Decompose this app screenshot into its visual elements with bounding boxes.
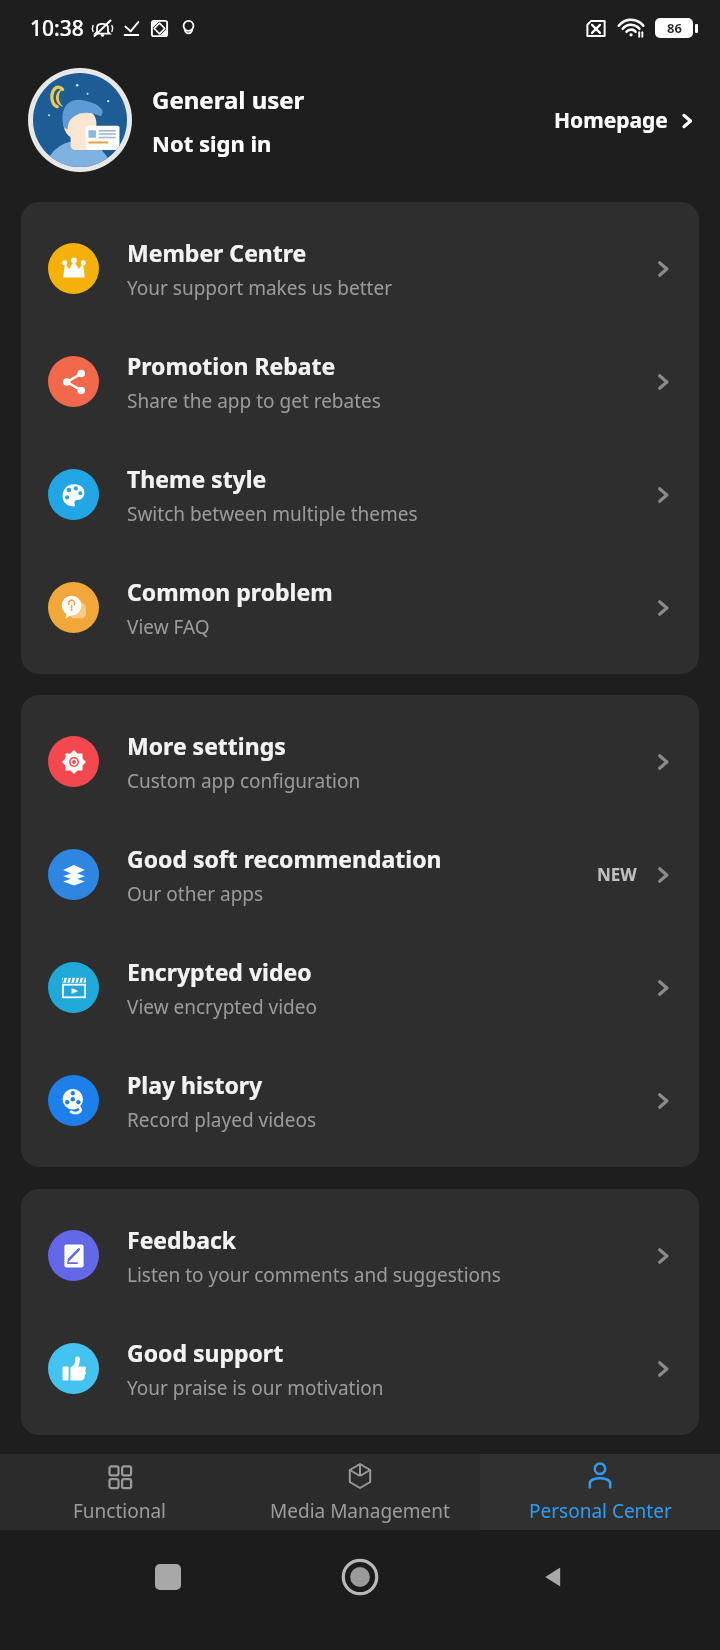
button[interactable]: Recent apps — [143, 1552, 193, 1602]
staticText: Our other apps — [127, 881, 264, 907]
staticText: View encrypted video — [127, 994, 317, 1020]
button[interactable]: More settings — [21, 705, 699, 818]
button[interactable]: Member Centre — [21, 212, 699, 325]
staticText: Good soft recommendation — [127, 843, 442, 874]
staticText: Functional — [73, 1498, 167, 1524]
staticText: Promotion Rebate — [127, 350, 336, 381]
button[interactable]: Homepage — [554, 106, 698, 135]
staticText: 10:38 — [30, 14, 84, 43]
staticText: Listen to your comments and suggestions — [127, 1262, 501, 1288]
button[interactable]: Good soft recommendation — [21, 818, 699, 931]
staticText: Custom app configuration — [127, 768, 361, 794]
staticText: Personal Center — [529, 1498, 672, 1524]
staticText: Good support — [127, 1337, 284, 1368]
staticText: Common problem — [127, 576, 333, 607]
staticText: Share the app to get rebates — [127, 388, 381, 414]
staticText: Feedback — [127, 1224, 237, 1255]
staticText: Record played videos — [127, 1107, 317, 1133]
staticText: Not sign in — [152, 128, 272, 158]
button[interactable]: Feedback — [21, 1199, 699, 1312]
staticText: View FAQ — [127, 614, 210, 640]
staticText: Homepage — [554, 106, 668, 135]
button[interactable]: Media Management — [240, 1454, 480, 1530]
staticText: Media Management — [270, 1498, 450, 1524]
button[interactable]: Good support — [21, 1312, 699, 1425]
staticText: Your praise is our motivation — [127, 1375, 384, 1401]
staticText: NEW — [597, 863, 637, 886]
button[interactable]: Encrypted video — [21, 931, 699, 1044]
button[interactable]: Personal Center — [480, 1454, 720, 1530]
staticText: General user — [152, 83, 305, 116]
button[interactable]: Play history — [21, 1044, 699, 1157]
button[interactable]: Home — [335, 1552, 385, 1602]
staticText: More settings — [127, 730, 286, 761]
button[interactable]: Common problem — [21, 551, 699, 664]
staticText: Your support makes us better — [127, 275, 392, 301]
staticText: Switch between multiple themes — [127, 501, 418, 527]
button[interactable]: Back — [528, 1552, 578, 1602]
staticText: Play history — [127, 1069, 263, 1100]
button[interactable]: Functional — [0, 1454, 240, 1530]
staticText: Theme style — [127, 463, 267, 494]
staticText: Member Centre — [127, 237, 307, 268]
staticText: 86 — [667, 19, 682, 37]
button[interactable]: General user — [0, 56, 720, 184]
button[interactable]: Promotion Rebate — [21, 325, 699, 438]
staticText: Encrypted video — [127, 956, 312, 987]
button[interactable]: Theme style — [21, 438, 699, 551]
